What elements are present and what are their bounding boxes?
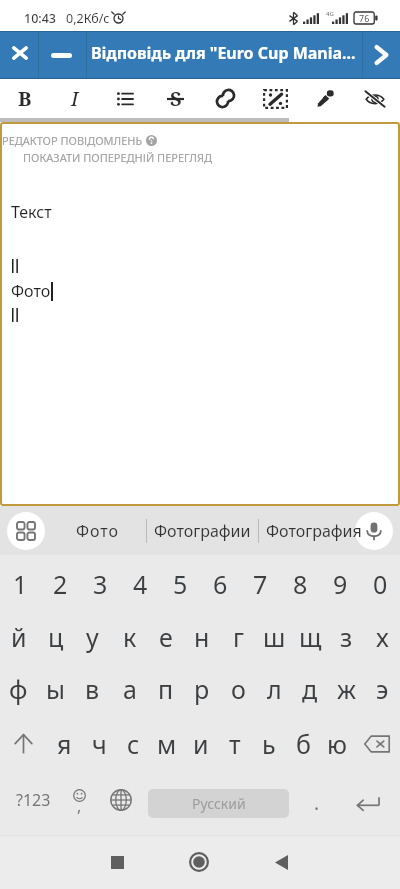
button[interactable]: я bbox=[47, 716, 82, 771]
button[interactable]: Фото bbox=[48, 511, 146, 551]
button[interactable]: к bbox=[111, 612, 148, 662]
staticText: и bbox=[193, 727, 209, 761]
button[interactable]: Bold bbox=[0, 79, 50, 118]
staticText: й bbox=[11, 620, 27, 654]
button[interactable]: 2 bbox=[40, 555, 80, 612]
button[interactable]: ч bbox=[82, 716, 116, 771]
button[interactable]: ц bbox=[37, 612, 74, 662]
button[interactable]: List bbox=[100, 79, 150, 118]
button[interactable]: 6 bbox=[200, 555, 240, 612]
button[interactable]: ф bbox=[0, 662, 37, 716]
button[interactable]: Фотографии bbox=[147, 511, 258, 551]
button[interactable]: Image bbox=[250, 79, 300, 118]
staticText: Фотографии bbox=[154, 520, 251, 542]
staticText: S bbox=[170, 85, 182, 112]
button[interactable]: д bbox=[292, 662, 328, 716]
button[interactable]: р bbox=[184, 662, 220, 716]
staticText: э bbox=[376, 672, 389, 706]
button[interactable]: х bbox=[364, 612, 400, 662]
button[interactable]: э bbox=[364, 662, 400, 716]
button[interactable]: Фотография bbox=[259, 511, 369, 551]
button[interactable]: г bbox=[220, 612, 256, 662]
staticText: п bbox=[158, 672, 174, 706]
button[interactable]: Italic bbox=[50, 79, 100, 118]
button[interactable]: . bbox=[289, 771, 345, 835]
button[interactable]: з bbox=[328, 612, 364, 662]
staticText: Русский bbox=[192, 794, 246, 813]
staticText: б bbox=[296, 727, 311, 761]
button[interactable]: й bbox=[0, 612, 37, 662]
button[interactable]: Русский bbox=[148, 789, 289, 818]
staticText: ПОКАЗАТИ ПОПЕРЕДНІЙ ПЕРЕГЛЯД bbox=[23, 150, 213, 165]
button[interactable]: 5 bbox=[160, 555, 200, 612]
button[interactable]: Back bbox=[240, 835, 322, 889]
staticText: ц bbox=[48, 620, 64, 654]
staticText: в bbox=[85, 672, 100, 706]
button[interactable]: 1 bbox=[0, 555, 40, 612]
button[interactable]: 9 bbox=[320, 555, 360, 612]
staticText: о bbox=[231, 672, 246, 706]
button[interactable]: ж bbox=[328, 662, 364, 716]
button[interactable]: п bbox=[148, 662, 184, 716]
staticText: Фото bbox=[11, 280, 51, 302]
button[interactable]: н bbox=[184, 612, 220, 662]
button[interactable]: 0 bbox=[360, 555, 400, 612]
staticText: Фото bbox=[76, 520, 119, 542]
button[interactable]: е bbox=[148, 612, 184, 662]
button[interactable]: т bbox=[218, 716, 252, 771]
button[interactable]: Clipboard bbox=[7, 512, 45, 550]
staticText: РЕДАКТОР ПОВІДОМЛЕНЬ bbox=[2, 133, 143, 148]
staticText: н bbox=[194, 620, 210, 654]
staticText: B bbox=[18, 85, 32, 112]
button[interactable]: 7 bbox=[240, 555, 280, 612]
button[interactable]: 3 bbox=[80, 555, 120, 612]
button[interactable]: с bbox=[116, 716, 150, 771]
staticText: ы bbox=[46, 672, 65, 706]
button[interactable]: а bbox=[111, 662, 148, 716]
staticText: 9 bbox=[333, 567, 348, 601]
button[interactable]: щ bbox=[292, 612, 328, 662]
staticText: 4 bbox=[133, 567, 148, 601]
button[interactable]: б bbox=[286, 716, 320, 771]
button[interactable]: Close bbox=[0, 32, 38, 78]
button[interactable]: Change language bbox=[93, 771, 148, 835]
button[interactable]: Emoji bbox=[66, 771, 93, 835]
button[interactable]: в bbox=[74, 662, 111, 716]
staticText: ?123 bbox=[16, 789, 51, 811]
button[interactable]: 8 bbox=[280, 555, 320, 612]
staticText: 6 bbox=[213, 567, 228, 601]
button[interactable]: и bbox=[184, 716, 218, 771]
staticText: ж bbox=[337, 672, 356, 706]
button[interactable]: Hide bbox=[350, 79, 400, 118]
button[interactable]: Link bbox=[200, 79, 250, 118]
button[interactable]: ь bbox=[252, 716, 286, 771]
button[interactable]: Backspace bbox=[354, 716, 400, 771]
button[interactable]: ы bbox=[37, 662, 74, 716]
button[interactable]: у bbox=[74, 612, 111, 662]
staticText: л bbox=[267, 672, 282, 706]
button[interactable]: о bbox=[220, 662, 256, 716]
staticText: ш bbox=[263, 620, 286, 654]
button[interactable]: Color bbox=[300, 79, 350, 118]
button[interactable]: Minimize bbox=[39, 32, 86, 78]
staticText: х bbox=[376, 620, 389, 654]
staticText: 5 bbox=[173, 567, 188, 601]
button[interactable]: Home bbox=[158, 835, 240, 889]
button[interactable]: ш bbox=[256, 612, 292, 662]
button[interactable]: Recents bbox=[76, 835, 158, 889]
button[interactable]: ю bbox=[320, 716, 354, 771]
staticText: е bbox=[159, 620, 173, 654]
button[interactable]: Enter bbox=[345, 771, 400, 835]
button[interactable]: м bbox=[150, 716, 184, 771]
button[interactable]: Strikethrough bbox=[150, 79, 200, 118]
button[interactable]: Next bbox=[363, 32, 400, 78]
button[interactable]: ?123 bbox=[0, 771, 66, 835]
button[interactable]: л bbox=[256, 662, 292, 716]
staticText: т bbox=[229, 727, 241, 761]
staticText: 0 bbox=[373, 567, 388, 601]
staticText: I bbox=[71, 85, 79, 112]
staticText: р bbox=[194, 672, 210, 706]
button[interactable]: 4 bbox=[120, 555, 160, 612]
button[interactable]: Shift bbox=[0, 716, 47, 771]
button[interactable]: Voice input bbox=[355, 512, 393, 550]
